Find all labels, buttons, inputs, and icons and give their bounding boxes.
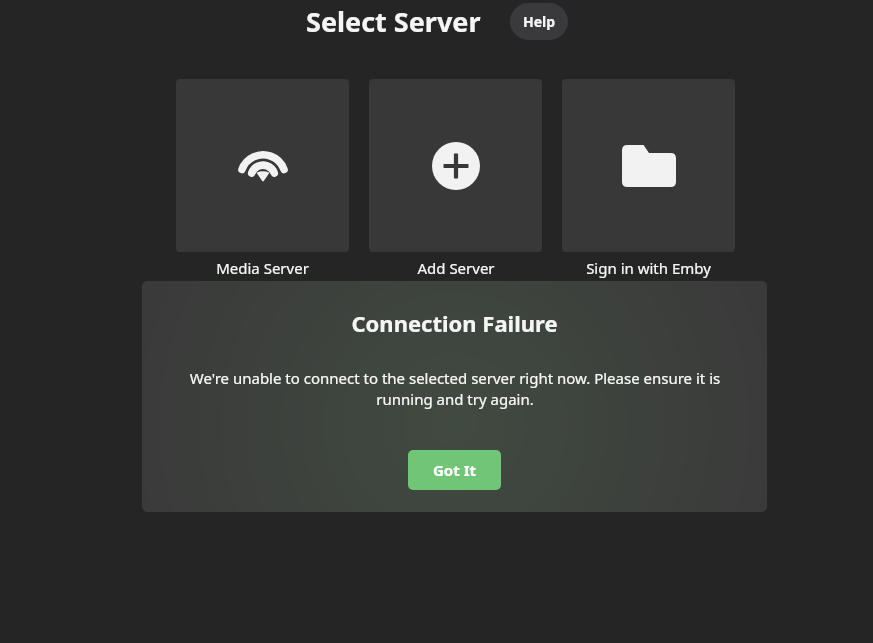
staticText: Media Server [216,258,309,278]
other: Sign in with Emby Connect [622,139,676,193]
staticText: Select Server [306,3,481,40]
button[interactable]: Sign in with Emby Connect [562,79,735,298]
staticText: We're unable to connect to the selected … [171,368,739,410]
other: Add Server [432,142,480,190]
button[interactable]: Media Server [176,79,349,278]
other: Media Server [235,138,291,194]
staticText: Add Server [417,258,495,278]
button[interactable]: Add Server [369,79,542,278]
staticText: Connection Failure [351,308,558,338]
button[interactable]: Got It [408,450,501,490]
staticText: Sign in with Emby Connect [562,258,735,298]
staticText: Help [523,12,556,31]
button[interactable]: Help [510,3,568,40]
staticText: Got It [433,460,476,480]
